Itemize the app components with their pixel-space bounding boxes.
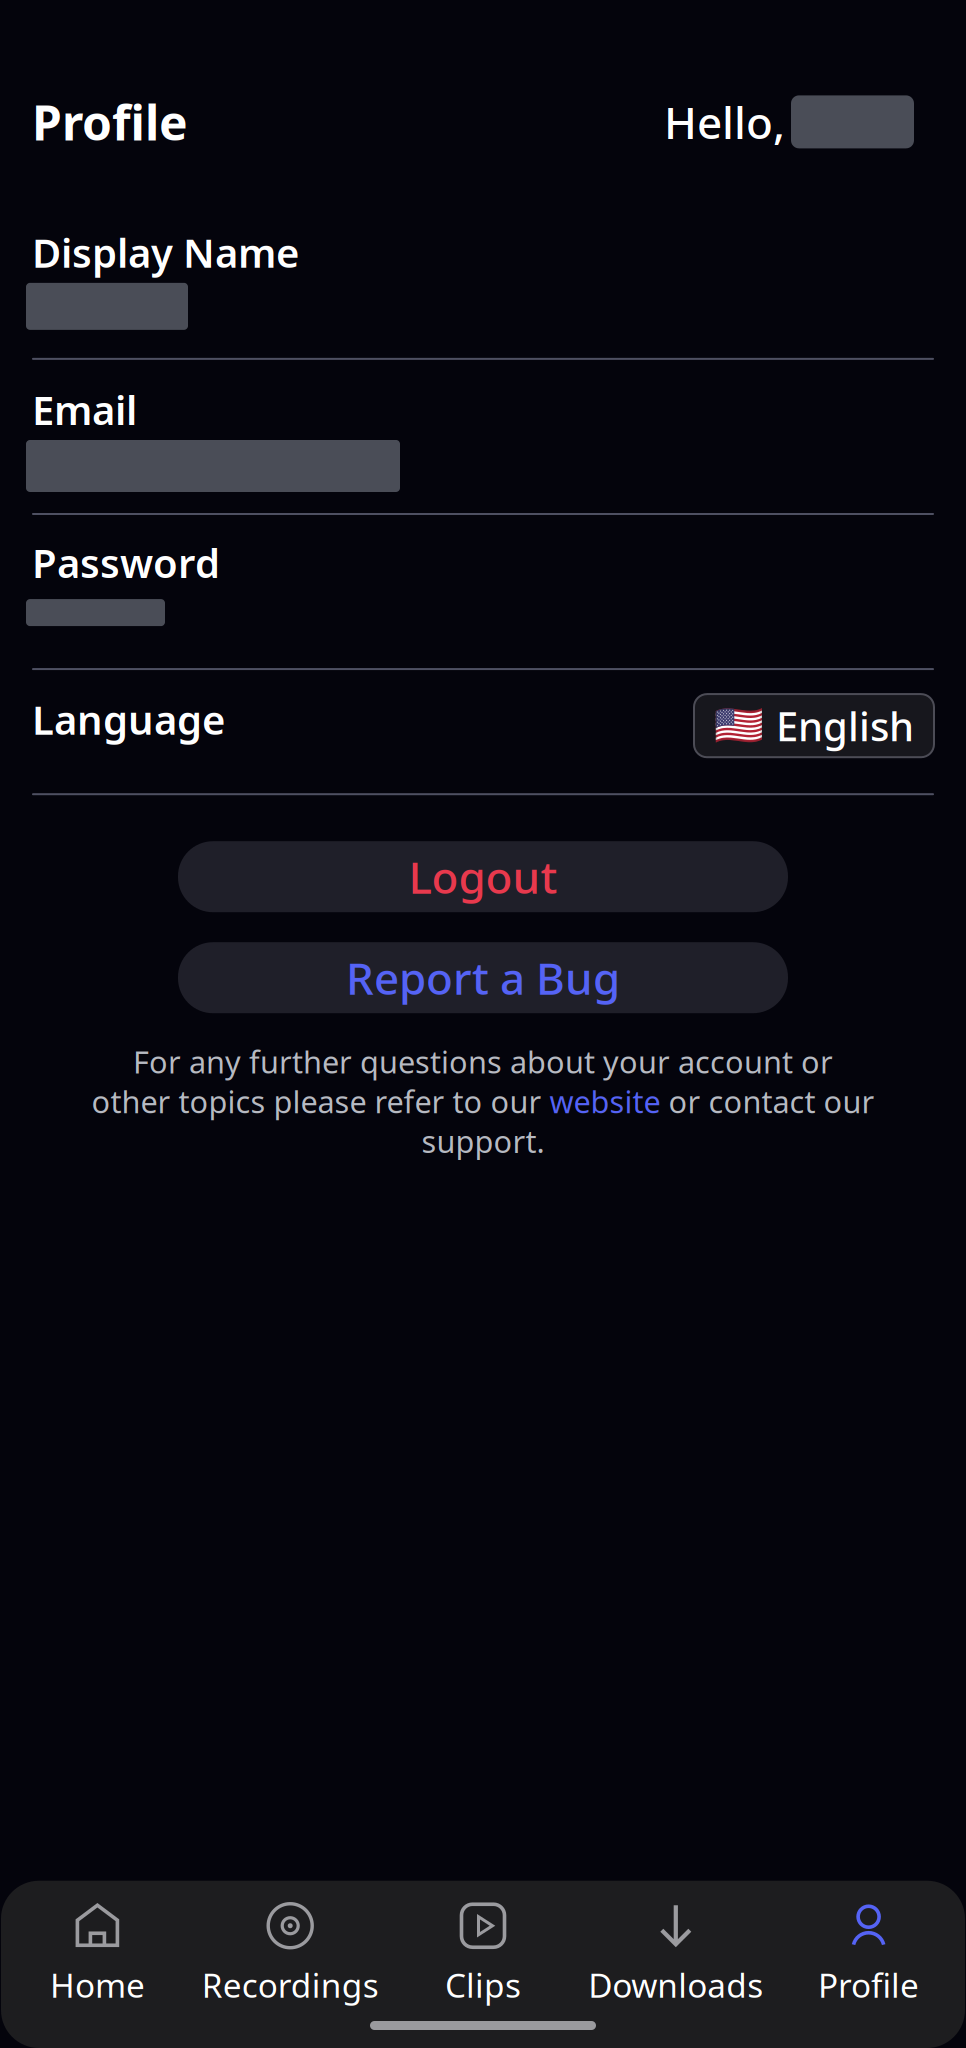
staticText: Logout — [408, 847, 557, 906]
staticText: Profile — [818, 1963, 919, 2007]
staticText: Downloads — [588, 1963, 763, 2007]
staticText: Home — [50, 1963, 145, 2007]
staticText: 🇺🇸 — [714, 703, 764, 748]
staticText: support. — [421, 1121, 544, 1161]
staticText: Password — [32, 536, 220, 589]
staticText: other topics please refer to our — [91, 1081, 549, 1122]
staticText: Report a Bug — [346, 948, 620, 1007]
button[interactable]: Home — [1, 1881, 194, 2007]
button[interactable]: Clips — [387, 1881, 579, 2007]
button[interactable]: Downloads — [579, 1881, 772, 2007]
staticText: Email — [32, 383, 137, 436]
staticText: Display Name — [32, 226, 299, 279]
button[interactable]: Logout — [178, 841, 788, 912]
staticText: Profile — [32, 90, 188, 154]
button[interactable]: 🇺🇸 — [694, 681, 934, 757]
staticText: Hello, — [664, 93, 785, 151]
button[interactable]: Recordings — [194, 1881, 387, 2007]
staticText: Recordings — [202, 1963, 379, 2007]
staticText: For any further questions about your acc… — [133, 1041, 833, 1082]
staticText: English — [776, 699, 914, 752]
staticText: website — [549, 1081, 660, 1122]
button[interactable]: Report a Bug — [178, 942, 788, 1013]
staticText: Language — [32, 693, 225, 746]
staticText: or contact our — [660, 1081, 874, 1122]
button[interactable]: Profile — [772, 1881, 965, 2007]
staticText: Clips — [445, 1963, 521, 2007]
